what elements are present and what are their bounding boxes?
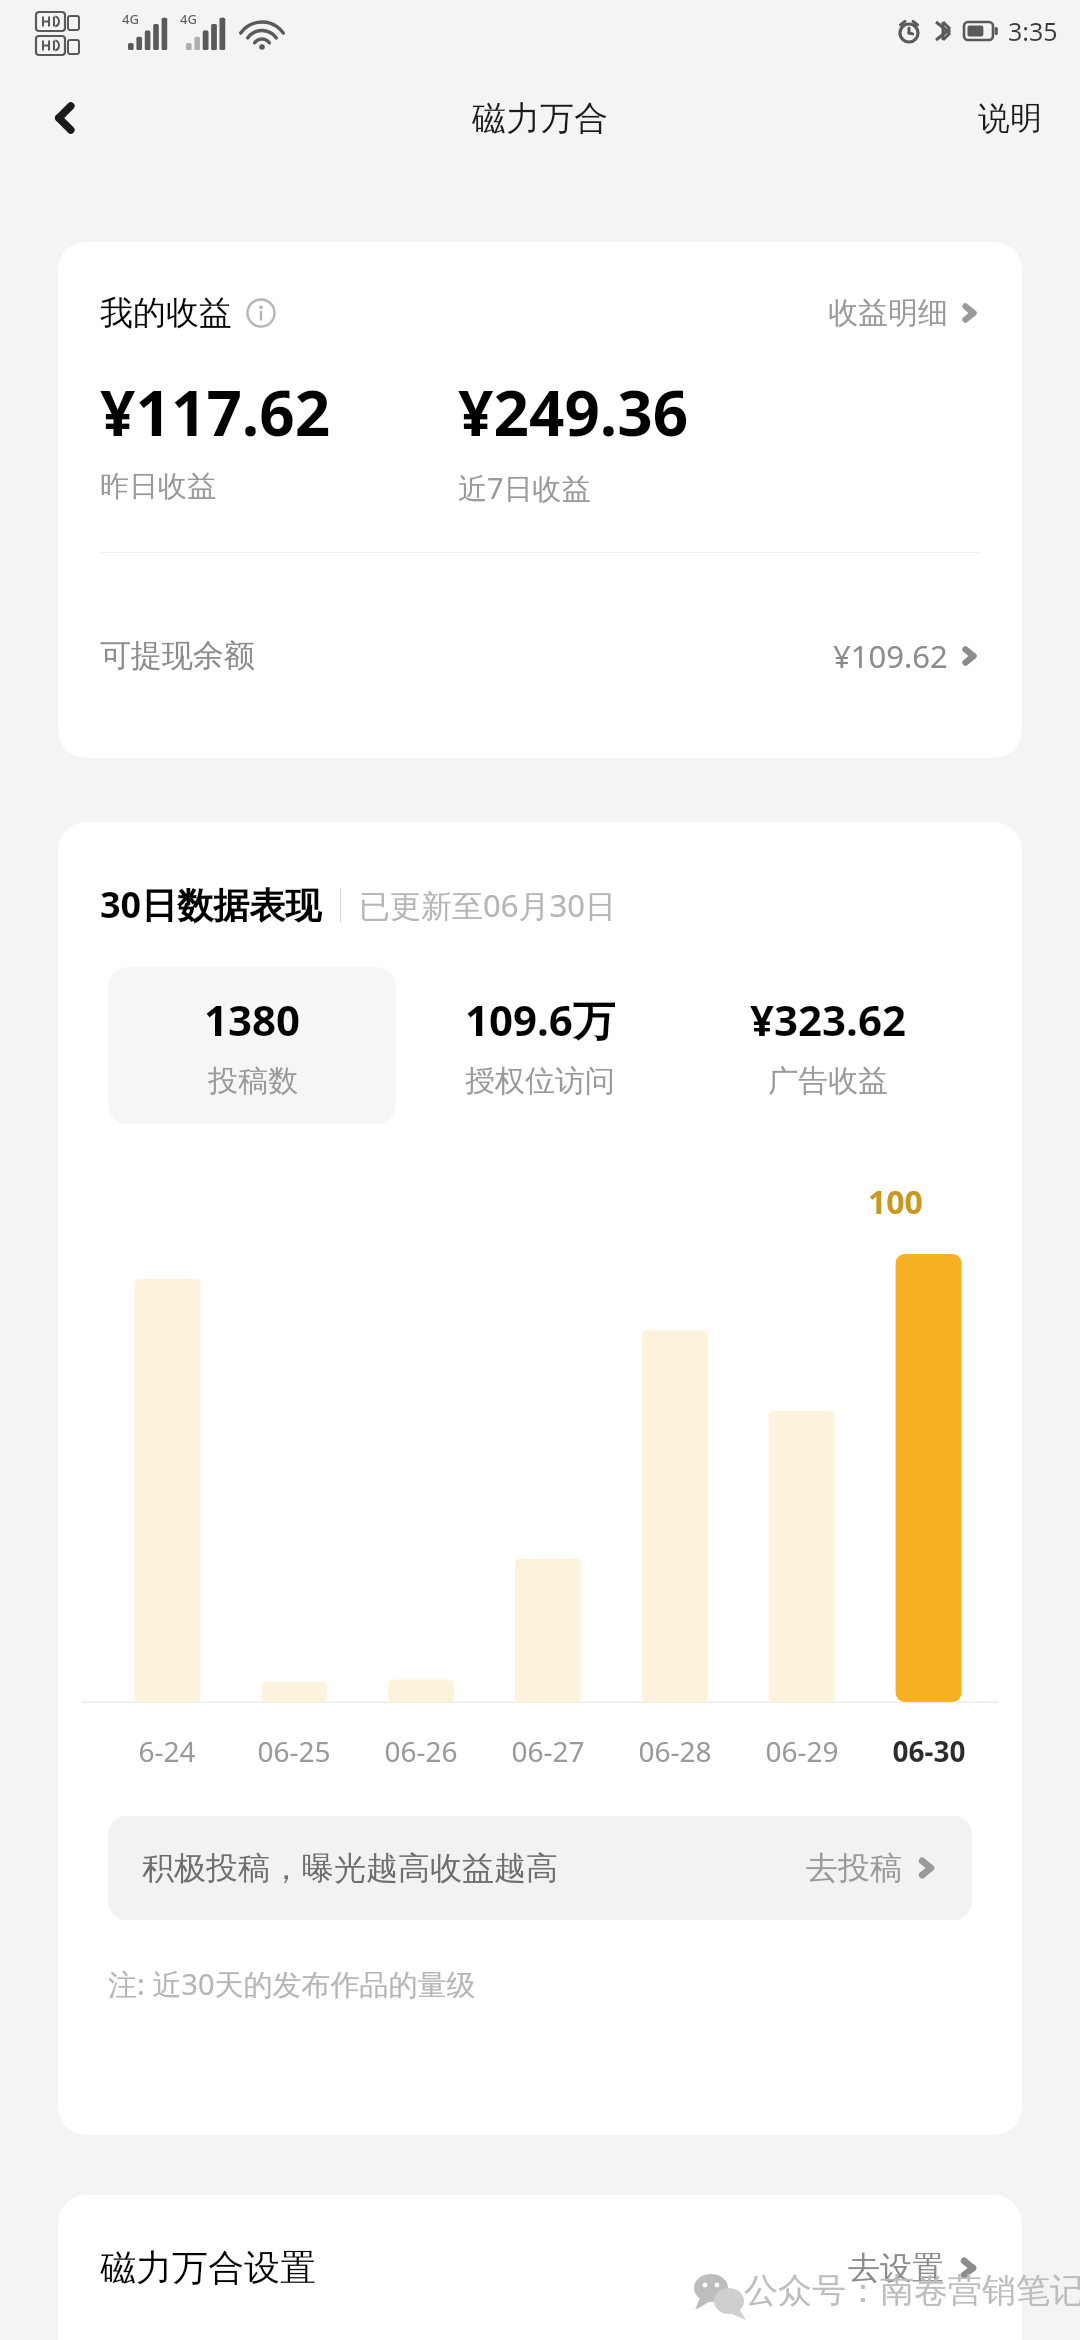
staticText: 磁力万合 [472, 97, 608, 140]
staticText: 100 [868, 1180, 923, 1224]
staticText: 注: 近30天的发布作品的量级 [108, 1964, 476, 2004]
staticText: 06-26 [384, 1732, 458, 1770]
button[interactable]: 磁力万合设置 [58, 2195, 1022, 2340]
staticText: 可提现余额 [100, 636, 255, 675]
button[interactable]: Info [244, 296, 278, 330]
staticText: 积极投稿，曝光越高收益越高 [142, 1848, 558, 1888]
staticText: 06-25 [257, 1732, 331, 1770]
staticText: 已更新至06月30日 [359, 884, 616, 926]
staticText: 授权位访问 [465, 1062, 615, 1100]
staticText: 109.6万 [465, 991, 615, 1048]
staticText: 3:35 [1008, 14, 1058, 48]
staticText: 06-28 [638, 1732, 712, 1770]
staticText: 昨日收益 [100, 468, 216, 505]
staticText: ¥323.62 [750, 991, 906, 1048]
staticText: 收益明细 [828, 294, 948, 332]
staticText: ¥109.62 [833, 635, 948, 677]
button[interactable]: 收益明细 [828, 288, 980, 338]
button[interactable]: 109.6万 [396, 967, 684, 1124]
staticText: 说明 [978, 98, 1042, 138]
staticText: 06-30 [892, 1732, 966, 1770]
staticText: 1380 [204, 991, 301, 1048]
staticText: ¥249.36 [458, 370, 689, 454]
staticText: ¥117.62 [100, 370, 331, 454]
staticText: 我的收益 [100, 292, 232, 334]
staticText: 4G [122, 10, 139, 28]
staticText: 去设置 [848, 2248, 944, 2288]
button[interactable]: ¥323.62 [684, 967, 972, 1124]
staticText: 广告收益 [768, 1062, 888, 1100]
button[interactable]: Back [30, 82, 102, 154]
button[interactable]: 说明 [970, 88, 1050, 148]
staticText: 06-29 [765, 1732, 839, 1770]
staticText: 06-27 [511, 1732, 585, 1770]
staticText: 公众号：南卷营销笔记 [744, 2269, 1080, 2312]
button[interactable]: 可提现余额 [58, 553, 1022, 758]
staticText: 30日数据表现 [100, 880, 322, 929]
staticText: 投稿数 [208, 1062, 298, 1100]
staticText: 6-24 [138, 1732, 196, 1770]
staticText: 近7日收益 [458, 468, 591, 508]
button[interactable]: 积极投稿，曝光越高收益越高 [108, 1816, 972, 1920]
staticText: 磁力万合设置 [100, 2245, 316, 2290]
staticText: 去投稿 [806, 1848, 902, 1888]
button[interactable]: 1380 [108, 967, 396, 1124]
staticText: 4G [180, 10, 197, 28]
